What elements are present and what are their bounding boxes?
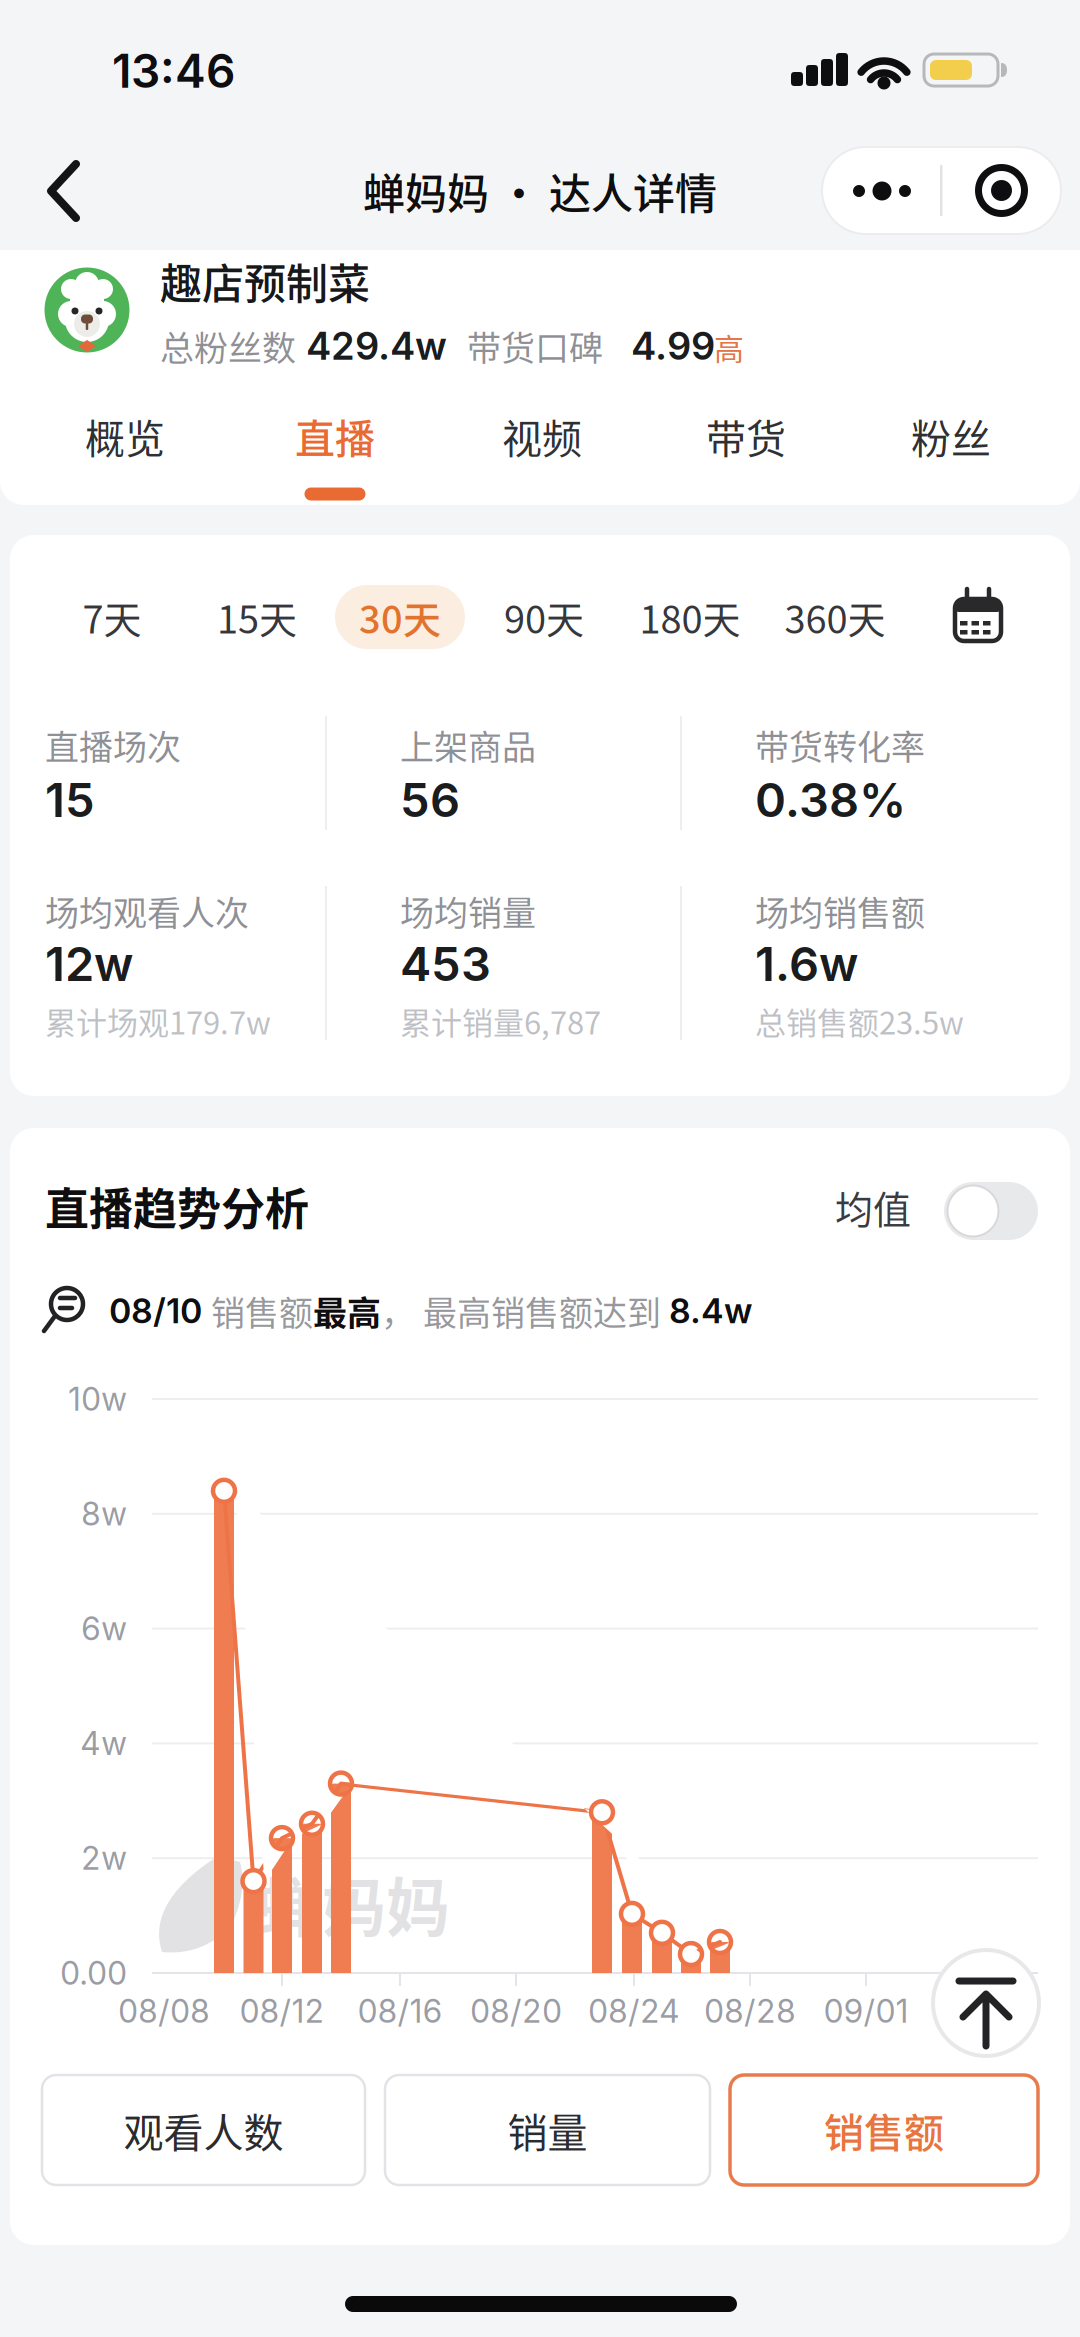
staticText: 30天	[359, 589, 441, 644]
button[interactable]: 销售额	[730, 2075, 1038, 2185]
button[interactable]: Exit	[942, 147, 1060, 234]
button[interactable]: 30天	[335, 585, 465, 649]
staticText: 累计销量6,787	[400, 999, 601, 1043]
staticText: 0.00	[60, 1954, 127, 1992]
staticText: 08/20	[470, 1992, 562, 2030]
staticText: 4w	[80, 1724, 127, 1763]
button[interactable]: 15天	[197, 582, 317, 652]
button[interactable]: 带货	[666, 391, 826, 481]
staticText: 15天	[217, 589, 297, 644]
staticText: 08/12	[239, 1992, 324, 2030]
staticText: 453	[400, 936, 491, 992]
button[interactable]: 选择日期	[946, 585, 1010, 649]
staticText: 最高	[313, 1286, 381, 1336]
staticText: 销售额	[824, 2101, 944, 2159]
staticText: 场均销售额	[755, 886, 925, 936]
staticText: 粉丝	[911, 407, 991, 465]
staticText: 08/08	[118, 1992, 210, 2030]
button[interactable]: Back	[18, 146, 108, 236]
staticText: 10w	[68, 1380, 127, 1418]
staticText: 最高销售额达到	[423, 1286, 669, 1336]
button[interactable]: 回到顶部	[933, 1950, 1039, 2056]
staticText: 4.99	[631, 323, 715, 369]
staticText: 13:46	[112, 43, 235, 99]
staticText: 8w	[81, 1494, 127, 1533]
staticText: 09/05	[938, 1992, 1029, 2030]
staticText: 直播	[295, 407, 375, 465]
staticText: 累计场观179.7w	[45, 999, 271, 1043]
staticText: 上架商品	[400, 720, 536, 770]
staticText: 概览	[85, 407, 165, 465]
staticText: 6w	[81, 1609, 127, 1648]
button[interactable]: 视频	[462, 391, 622, 481]
staticText: 带货	[706, 407, 786, 465]
staticText: 销售额	[211, 1286, 313, 1336]
staticText: 蝉妈妈	[258, 1857, 450, 1949]
staticText: 带货转化率	[755, 720, 925, 770]
button[interactable]: 销量	[385, 2075, 710, 2185]
button[interactable]: 粉丝	[871, 391, 1031, 481]
button[interactable]: More	[822, 147, 940, 234]
staticText: ，	[381, 1286, 423, 1336]
staticText: 带货口碑	[467, 321, 603, 371]
staticText: 08/16	[357, 1992, 442, 2030]
button[interactable]: 360天	[775, 582, 895, 652]
staticText: 08/24	[588, 1992, 680, 2030]
button[interactable]: 概览	[45, 391, 205, 481]
staticText: 视频	[502, 407, 582, 465]
staticText: 观看人数	[123, 2101, 283, 2159]
button[interactable]: 观看人数	[42, 2075, 365, 2185]
staticText: 15	[45, 772, 95, 828]
staticText: 8.4w	[669, 1290, 753, 1331]
button[interactable]: 均值	[944, 1182, 1038, 1240]
staticText: 08/28	[704, 1992, 796, 2030]
staticText: 360天	[784, 589, 885, 644]
staticText: 销量	[507, 2101, 587, 2159]
staticText: 08/10	[109, 1290, 211, 1331]
button[interactable]: 180天	[630, 582, 750, 652]
staticText: 0.38%	[755, 772, 906, 828]
staticText: 7天	[82, 589, 141, 644]
staticText: 2w	[81, 1839, 127, 1877]
button[interactable]: 90天	[484, 582, 604, 652]
staticText: 12w	[45, 936, 133, 992]
staticText: 56	[400, 772, 460, 828]
staticText: 场均观看人次	[45, 886, 249, 936]
button[interactable]: 直播	[255, 391, 415, 481]
staticText: 180天	[639, 589, 740, 644]
staticText: 直播趋势分析	[45, 1174, 309, 1238]
staticText: 蝉妈妈 · 达人详情	[363, 161, 717, 221]
staticText: 总销售额23.5w	[755, 999, 964, 1043]
staticText: 429.4w	[306, 323, 447, 369]
staticText: 均值	[835, 1179, 911, 1234]
staticText: 09/01	[823, 1992, 908, 2030]
staticText: 趣店预制菜	[160, 251, 370, 311]
staticText: 总粉丝数	[160, 321, 296, 371]
button[interactable]: 7天	[52, 582, 172, 652]
staticText: 场均销量	[400, 886, 536, 936]
staticText: 直播场次	[45, 720, 181, 770]
staticText: 1.6w	[755, 936, 858, 992]
staticText: 高	[714, 325, 744, 369]
staticText: 90天	[504, 589, 584, 644]
